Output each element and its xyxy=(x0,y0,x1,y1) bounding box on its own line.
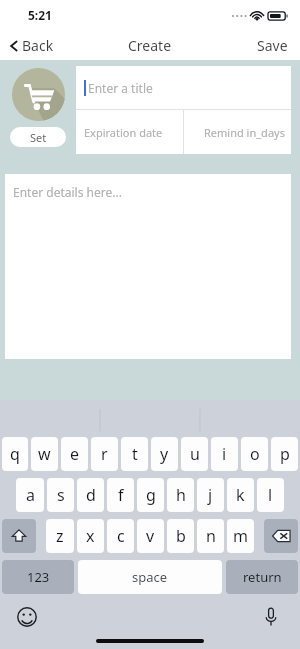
staticText: Enter details here... xyxy=(13,184,122,200)
button[interactable]: a xyxy=(16,478,44,512)
staticText: j xyxy=(208,484,213,506)
staticText: q xyxy=(10,443,20,465)
button[interactable]: p xyxy=(271,437,298,471)
button[interactable]: r xyxy=(91,437,118,471)
staticText: r xyxy=(101,443,108,465)
button[interactable]: g xyxy=(137,478,164,512)
button[interactable]: x xyxy=(77,519,104,553)
staticText: 5:21 xyxy=(28,7,52,23)
staticText: Remind in_days xyxy=(204,125,285,140)
button[interactable]: t xyxy=(121,437,148,471)
staticText: x xyxy=(86,525,95,547)
button[interactable]: Enter details here... xyxy=(5,174,291,359)
button[interactable]: j xyxy=(197,478,224,512)
staticText: i xyxy=(222,443,227,465)
button[interactable]: w xyxy=(31,437,58,471)
button[interactable]: space xyxy=(78,560,222,594)
staticText: Back xyxy=(22,36,54,55)
staticText: h xyxy=(176,484,186,506)
button[interactable]: Remind in_days xyxy=(184,110,291,154)
button[interactable]: q xyxy=(2,437,28,471)
staticText: m xyxy=(233,525,248,547)
button[interactable]: Back xyxy=(8,36,54,55)
staticText: v xyxy=(146,525,155,547)
button[interactable]: e xyxy=(61,437,88,471)
staticText: y xyxy=(160,443,169,465)
staticText: t xyxy=(132,443,138,465)
staticText: l xyxy=(268,484,273,506)
staticText: c xyxy=(117,525,125,547)
staticText: 123 xyxy=(27,568,50,586)
button[interactable]: k xyxy=(227,478,254,512)
staticText: space xyxy=(132,568,168,586)
staticText: u xyxy=(190,443,200,465)
button[interactable]: Enter a title xyxy=(76,66,291,109)
button[interactable]: Backspace xyxy=(264,519,298,553)
button[interactable]: Save xyxy=(257,36,288,55)
staticText: e xyxy=(70,443,80,465)
staticText: o xyxy=(250,443,260,465)
button[interactable]: n xyxy=(197,519,224,553)
staticText: a xyxy=(26,484,35,506)
staticText: Expiration date xyxy=(84,125,163,140)
staticText: s xyxy=(57,484,65,506)
button[interactable]: return xyxy=(226,560,298,594)
button[interactable]: b xyxy=(167,519,194,553)
button[interactable]: f xyxy=(107,478,134,512)
button[interactable]: u xyxy=(181,437,208,471)
button[interactable]: Dictation xyxy=(258,604,284,630)
button[interactable]: Set xyxy=(10,127,66,147)
staticText: d xyxy=(86,484,96,506)
button[interactable]: Expiration date xyxy=(76,110,183,154)
button[interactable]: d xyxy=(77,478,104,512)
button[interactable]: m xyxy=(227,519,254,553)
button[interactable]: o xyxy=(241,437,268,471)
button[interactable]: i xyxy=(211,437,238,471)
staticText: p xyxy=(280,443,290,465)
button[interactable]: v xyxy=(137,519,164,553)
staticText: g xyxy=(146,484,156,506)
staticText: Set xyxy=(30,130,47,145)
staticText: f xyxy=(118,484,124,506)
button[interactable]: Choose icon xyxy=(12,68,65,121)
button[interactable]: s xyxy=(47,478,74,512)
staticText: b xyxy=(176,525,186,547)
staticText: n xyxy=(206,525,216,547)
button[interactable]: c xyxy=(107,519,134,553)
staticText: w xyxy=(38,443,51,465)
staticText: z xyxy=(56,525,64,547)
button[interactable]: 123 xyxy=(2,560,74,594)
button[interactable]: h xyxy=(167,478,194,512)
staticText: Create xyxy=(128,36,172,55)
staticText: Enter a title xyxy=(88,80,153,96)
button[interactable]: Shift xyxy=(2,519,36,553)
button[interactable]: y xyxy=(151,437,178,471)
button[interactable]: z xyxy=(46,519,74,553)
button[interactable]: l xyxy=(257,478,284,512)
button[interactable]: Emoji xyxy=(14,604,40,630)
staticText: return xyxy=(243,568,282,586)
staticText: k xyxy=(236,484,245,506)
